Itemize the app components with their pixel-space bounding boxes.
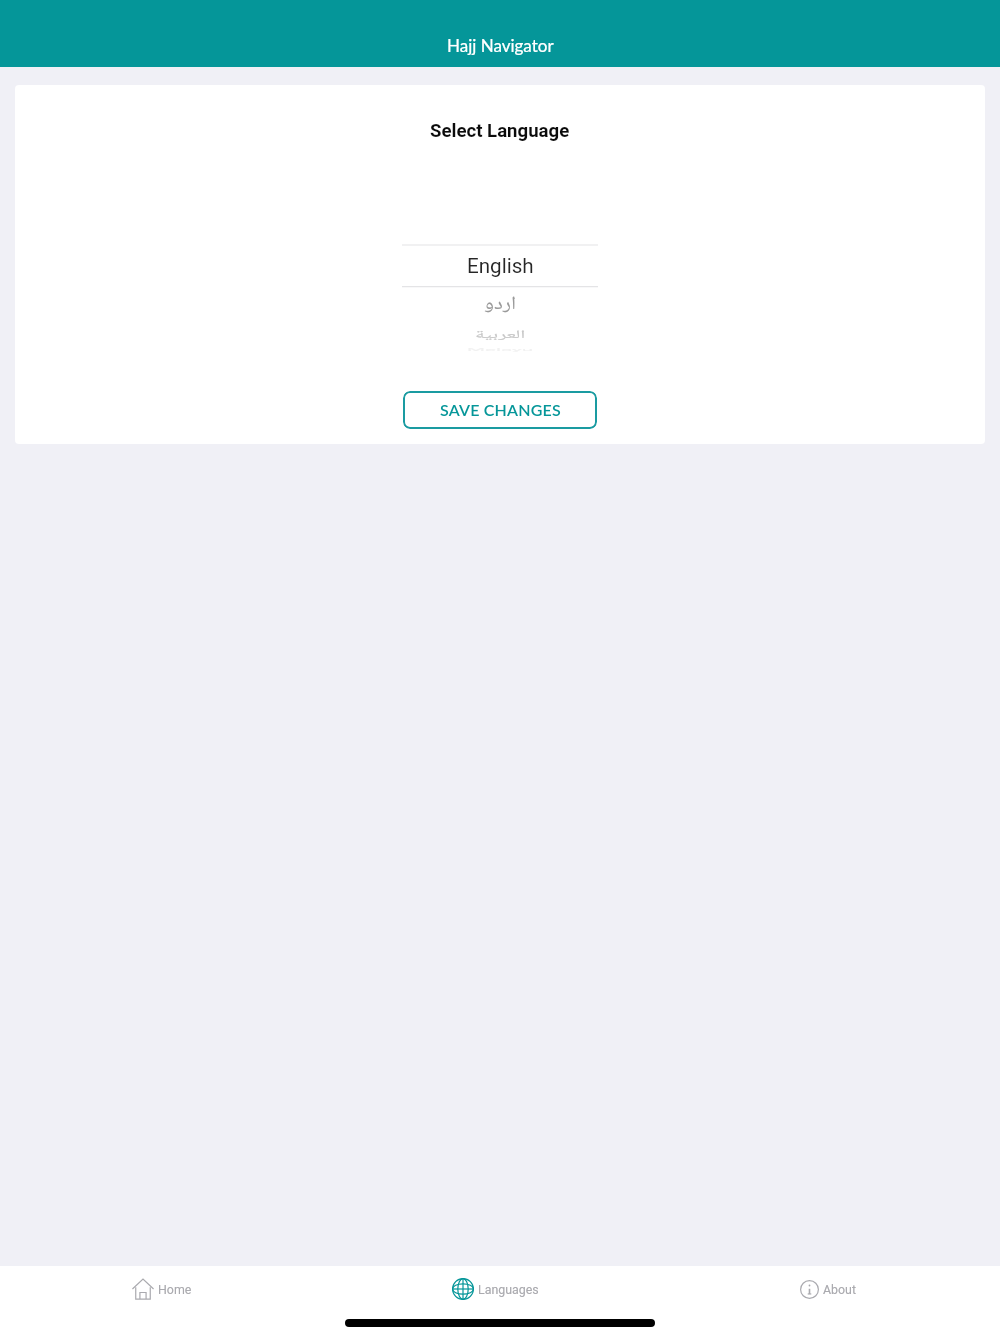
button[interactable]: SAVE CHANGES (403, 391, 597, 429)
other: Languages (452, 1278, 474, 1300)
staticText: English (467, 254, 534, 278)
button[interactable]: About (667, 1266, 1000, 1312)
button[interactable]: Languages (334, 1266, 667, 1312)
staticText: اردو (484, 289, 517, 321)
staticText: Select Language (430, 120, 570, 142)
staticText: Home (158, 1282, 192, 1297)
button[interactable]: Language picker (402, 230, 598, 362)
button[interactable]: Home (0, 1266, 334, 1312)
staticText: Languages (478, 1282, 539, 1297)
other: About (800, 1280, 819, 1299)
staticText: SAVE CHANGES (440, 400, 561, 419)
staticText: العربية (475, 325, 526, 345)
staticText: About (823, 1282, 856, 1297)
other: Home (132, 1278, 154, 1300)
staticText: Hajj Navigator (447, 35, 554, 55)
staticText: Melayu (467, 348, 534, 352)
